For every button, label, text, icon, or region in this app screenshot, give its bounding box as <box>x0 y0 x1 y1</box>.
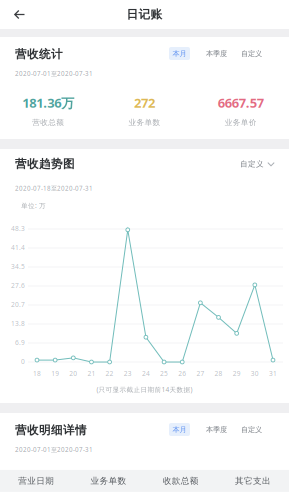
staticText: 272 <box>134 94 155 112</box>
staticText: 本季度 <box>206 425 227 434</box>
staticText: 21 <box>87 369 95 378</box>
staticText: 自定义 <box>240 159 264 169</box>
staticText: (只可显示截止日期前14天数据) <box>96 385 192 394</box>
staticText: 其它支出 <box>235 475 271 486</box>
staticText: 13.8 <box>11 319 25 328</box>
staticText: 2020-07-18至2020-07-31 <box>15 184 93 192</box>
staticText: 营业日期 <box>18 475 54 486</box>
staticText: 30 <box>251 369 259 378</box>
button[interactable]: 本季度 <box>199 423 234 436</box>
staticText: 业务单价 <box>225 118 257 127</box>
staticText: 业务单数 <box>90 475 126 486</box>
button[interactable]: 本季度 <box>199 47 234 60</box>
staticText: 27.6 <box>11 281 25 290</box>
button[interactable]: Back <box>0 0 35 28</box>
staticText: 19 <box>51 369 59 378</box>
staticText: 营收明细详情 <box>15 423 87 437</box>
staticText: 29 <box>233 369 241 378</box>
staticText: 本月 <box>172 49 186 58</box>
staticText: 18 <box>33 369 41 378</box>
button[interactable]: 本月 <box>169 423 190 436</box>
staticText: 27 <box>196 369 204 378</box>
button[interactable]: 本月 <box>169 47 190 60</box>
staticText: 自定义 <box>241 425 262 434</box>
staticText: 26 <box>178 369 186 378</box>
button[interactable]: 自定义 <box>234 47 269 60</box>
staticText: 41.4 <box>11 243 25 252</box>
staticText: 28 <box>214 369 222 378</box>
button[interactable]: 自定义 <box>234 423 269 436</box>
staticText: 0 <box>21 357 25 366</box>
staticText: 本季度 <box>206 49 227 58</box>
staticText: 业务单数 <box>128 118 160 127</box>
staticText: 日记账 <box>126 7 162 22</box>
staticText: 24 <box>142 369 150 378</box>
staticText: 34.5 <box>11 262 25 271</box>
staticText: 31 <box>269 369 277 378</box>
staticText: 181.36万 <box>22 94 74 112</box>
staticText: 单位: 万 <box>21 201 46 210</box>
staticText: 6.9 <box>15 338 25 347</box>
staticText: 2020-07-01至2020-07-31 <box>15 69 93 78</box>
staticText: 自定义 <box>241 49 262 58</box>
staticText: 营收统计 <box>15 47 63 61</box>
staticText: 营收总额 <box>32 118 64 127</box>
staticText: 本月 <box>172 425 186 434</box>
staticText: 20 <box>69 369 77 378</box>
staticText: 收款总额 <box>163 475 199 486</box>
staticText: 2020-07-01至2020-07-31 <box>15 445 93 454</box>
staticText: 20.7 <box>11 300 25 309</box>
staticText: 营收趋势图 <box>15 157 75 171</box>
staticText: 48.3 <box>11 224 25 233</box>
staticText: 23 <box>124 369 132 378</box>
staticText: 25 <box>160 369 168 378</box>
staticText: 6667.57 <box>218 94 264 112</box>
staticText: 22 <box>106 369 114 378</box>
button[interactable]: 自定义 <box>240 157 275 171</box>
